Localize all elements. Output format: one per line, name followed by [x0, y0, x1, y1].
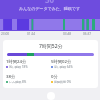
staticText: 浅い睡眠 18% — [9, 65, 28, 69]
staticText: 06:37 — [83, 32, 92, 36]
staticText: 5時間02分 — [51, 58, 72, 64]
staticText: 0分 — [51, 73, 58, 79]
button[interactable]: 1時間24分 — [6, 58, 51, 69]
staticText: 覚醒状態 0% — [54, 80, 71, 84]
button[interactable]: 5時間02分 — [51, 58, 96, 69]
staticText: 30 — [45, 0, 55, 5]
button[interactable]: 38分 — [6, 73, 51, 84]
button[interactable]: 0分 — [51, 73, 96, 84]
staticText: みんなのデータでみた、睡眠です — [19, 6, 81, 11]
staticText: 深い睡眠 64% — [54, 65, 73, 69]
staticText: 7時間52分 — [39, 43, 63, 50]
staticText: レム睡眠 8% — [9, 80, 27, 84]
staticText: 03:48 — [63, 32, 72, 36]
staticText: 01:24 — [27, 32, 36, 36]
button[interactable]: Expand — [47, 92, 55, 100]
staticText: 1時間24分 — [6, 58, 27, 64]
staticText: 38分 — [6, 73, 16, 79]
button[interactable]: 7時間52分 — [3, 40, 98, 88]
staticText: 23:00 — [1, 32, 10, 36]
